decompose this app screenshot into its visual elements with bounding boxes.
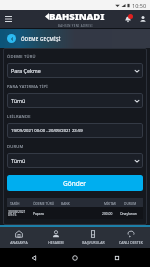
staticText: Gönder — [63, 179, 87, 188]
staticText: BANK — [61, 201, 104, 205]
staticText: Tümü — [11, 157, 26, 164]
staticText: 30/08/2021 09:15 — [8, 209, 33, 217]
button[interactable]: BAŞVURULAR — [74, 227, 112, 248]
button[interactable]: Notifications — [120, 10, 135, 28]
staticText: LEİLRANDE — [7, 114, 31, 120]
staticText: Papara — [33, 211, 61, 215]
button[interactable]: Back — [7, 34, 16, 43]
staticText: BAHSIN YENI ADRESI — [58, 24, 93, 28]
button[interactable]: Home — [67, 250, 83, 266]
staticText: Para Çekme — [11, 67, 41, 74]
button[interactable]: Tümü — [7, 153, 143, 168]
button[interactable]: 19/09/2021 00:00 - 20/09/2021 23:59 — [7, 123, 143, 138]
button[interactable]: Recents — [109, 250, 125, 266]
staticText: CANLI DESTEK — [119, 240, 143, 245]
staticText: ÖDEME TÜRÜ — [33, 201, 61, 205]
staticText: 19/09/2021 00:00 - 20/09/2021 23:59 — [11, 128, 83, 134]
staticText: DURUM — [124, 201, 143, 205]
staticText: TARİH — [10, 201, 33, 205]
button[interactable]: Tümü — [7, 93, 143, 108]
staticText: Onaylanan — [120, 211, 140, 215]
staticText: ÖDEME GEÇMİŞİ — [21, 36, 61, 42]
button[interactable]: CANLI DESTEK — [112, 227, 150, 248]
button[interactable]: HESABIM — [37, 227, 74, 248]
staticText: 10:50 — [132, 2, 147, 9]
button[interactable]: Menu — [0, 10, 16, 28]
staticText: BAŞVURULAR — [82, 240, 105, 245]
button[interactable]: Profile — [135, 10, 150, 28]
staticText: MİKTAR — [104, 201, 124, 205]
staticText: DURUM — [7, 144, 24, 150]
staticText: BAHSINADI — [49, 10, 105, 23]
staticText: 200.00 — [102, 211, 120, 215]
button[interactable]: Para Çekme — [7, 63, 143, 78]
staticText: Tümü — [11, 97, 26, 104]
staticText: ANASAYFA — [10, 240, 28, 245]
staticText: ÖDEME TÜRÜ — [7, 54, 36, 60]
button[interactable]: Back — [26, 250, 42, 266]
staticText: HESABIM — [48, 240, 64, 245]
staticText: PARA YATIRMA TİPİ — [7, 84, 48, 90]
button[interactable]: Gönder — [7, 175, 143, 191]
button[interactable]: ANASAYFA — [0, 227, 37, 248]
